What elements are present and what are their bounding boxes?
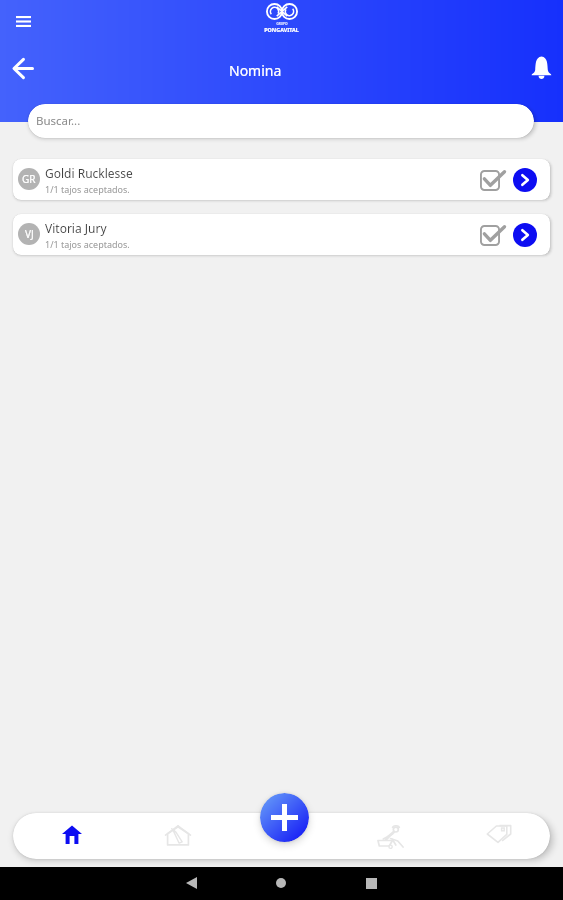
button[interactable]: Accepted <box>475 218 511 252</box>
button[interactable]: Workers <box>362 812 422 858</box>
button[interactable]: Tags <box>469 811 529 857</box>
button[interactable]: Accepted <box>475 163 511 197</box>
button[interactable]: Open details <box>513 168 537 192</box>
button[interactable]: Buscar... <box>28 104 534 138</box>
button[interactable]: Notifications <box>523 50 559 86</box>
staticText: Nomina <box>229 61 282 80</box>
button[interactable]: Open details <box>513 223 537 247</box>
staticText: GR <box>22 172 36 186</box>
button[interactable]: Recents <box>355 867 387 899</box>
button[interactable]: Home <box>42 811 102 857</box>
button[interactable]: Add <box>260 793 309 842</box>
button[interactable]: VJ <box>13 214 550 255</box>
button[interactable]: GR <box>13 159 550 200</box>
button[interactable]: Menu <box>7 5 39 37</box>
staticText: Buscar... <box>36 113 81 129</box>
staticText: Vitoria Jury <box>45 220 107 236</box>
staticText: 1/1 tajos aceptados. <box>45 238 130 250</box>
staticText: Goldi Rucklesse <box>45 165 133 181</box>
staticText: GRUPO <box>276 22 288 26</box>
staticText: PONGAVITAL <box>264 26 299 33</box>
staticText: 1/1 tajos aceptados. <box>45 183 130 195</box>
button[interactable]: Home <box>265 867 297 899</box>
button[interactable]: Back <box>5 50 41 86</box>
button[interactable]: Back <box>175 867 207 899</box>
staticText: VJ <box>25 227 34 241</box>
button[interactable]: Properties <box>148 812 208 858</box>
